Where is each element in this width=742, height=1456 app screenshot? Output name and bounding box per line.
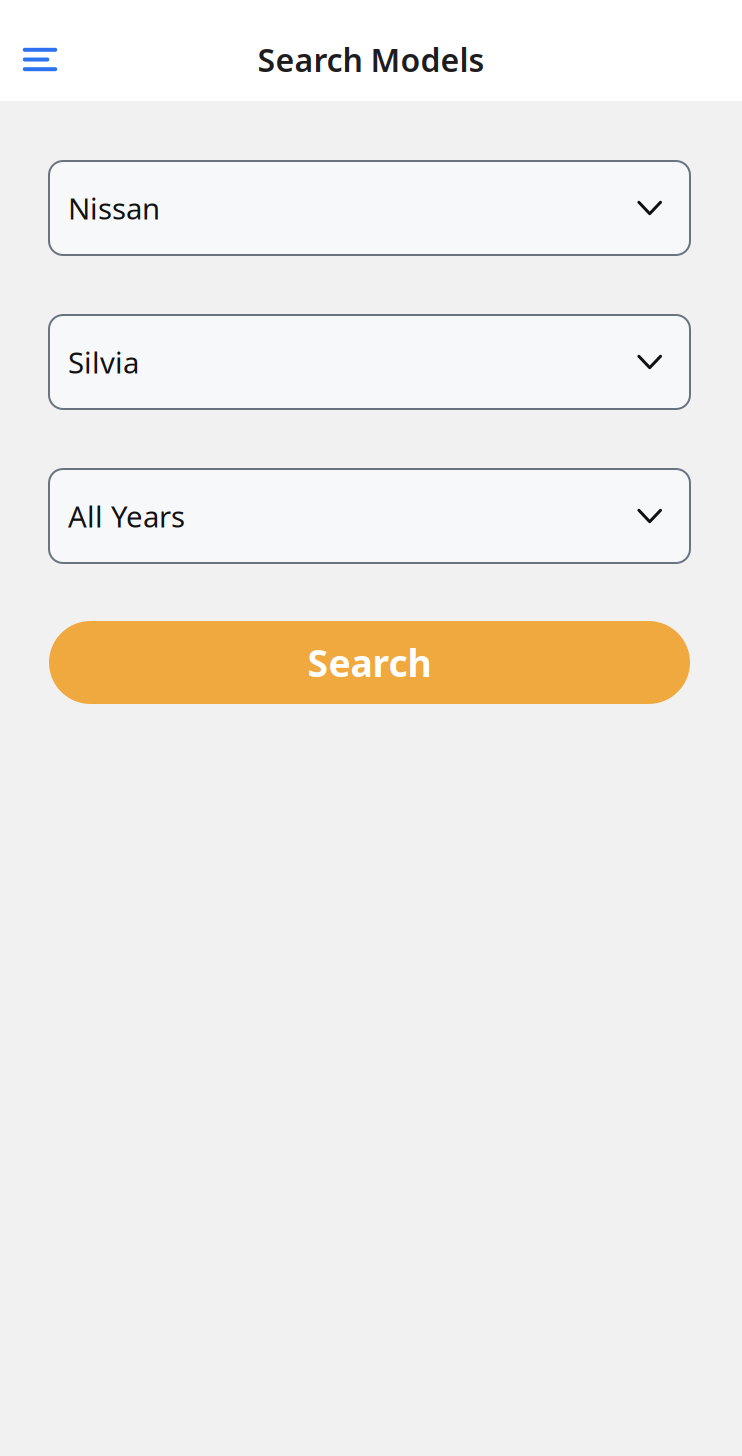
button[interactable]: Silvia: [49, 315, 690, 409]
staticText: Silvia: [68, 342, 139, 381]
staticText: Nissan: [68, 188, 160, 227]
staticText: Search: [307, 638, 431, 687]
button[interactable]: Menu: [11, 30, 69, 88]
button[interactable]: Search: [49, 621, 690, 704]
staticText: All Years: [68, 496, 185, 535]
button[interactable]: Nissan: [49, 161, 690, 255]
staticText: Search Models: [257, 38, 484, 81]
button[interactable]: All Years: [49, 469, 690, 563]
